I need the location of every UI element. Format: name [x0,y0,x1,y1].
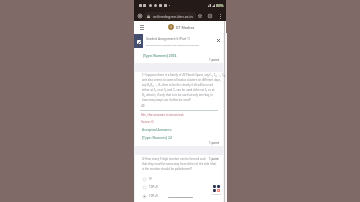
button[interactable]: More options [217,13,223,19]
staticText: say B₁,B₂, …, Bₙ then to be the cleanly … [142,83,213,87]
staticText: 1 point [209,58,220,62]
staticText: and also seems to some all status cluste… [142,78,221,82]
staticText: either at S₁ or at S₂ and Cₙ can be used… [142,88,215,92]
staticText: 10P+9 [149,194,158,198]
staticText: B₂, what is, if only that is to be used … [142,93,213,97]
button[interactable]: 9! [143,177,189,181]
staticText: [Type: Numeric] 24 [142,135,172,140]
staticText: 1 point [209,141,220,145]
staticText: that they read the same way from either … [142,162,217,166]
staticText: 86% [216,3,224,8]
staticText: is the number should be palindrome)? [142,167,192,171]
button[interactable]: 10P+9 [143,185,189,189]
button[interactable]: 10P+9 [143,194,189,198]
staticText: The due date for submitting this assignm… [146,44,200,47]
staticText: No, the answer is incorrect. [141,112,185,117]
staticText: onlinedegree.iitm.ac.in [153,14,193,19]
button[interactable]: Close [214,36,223,45]
button[interactable]: Bookmark [196,12,204,20]
button[interactable]: Menu [137,23,146,32]
button[interactable]: Payment methods [211,183,222,194]
staticText: [Type: Numeric] 2074 [143,53,177,57]
staticText: Accepted Answers: [142,127,172,132]
staticText: 1 point [209,157,219,161]
staticText: 10P+9 [149,185,158,189]
button[interactable]: Home [136,12,144,20]
staticText: 40 [141,104,145,108]
button[interactable]: onlinedegree.iitm.ac.in [144,12,196,20]
staticText: 4) How many 9 digit number can be formed… [142,157,207,161]
staticText: 9! [149,177,152,181]
staticText: 1) Suppose there is a family of 40 Planc… [142,73,226,77]
button[interactable]: Switch tabs [206,12,214,20]
staticText: IIT Madras [176,25,195,30]
staticText: Score: 0 [141,119,154,124]
staticText: how many ways can clothes be used? [142,98,191,102]
staticText: Graded Assignment 6 (Part 1) [146,37,190,41]
